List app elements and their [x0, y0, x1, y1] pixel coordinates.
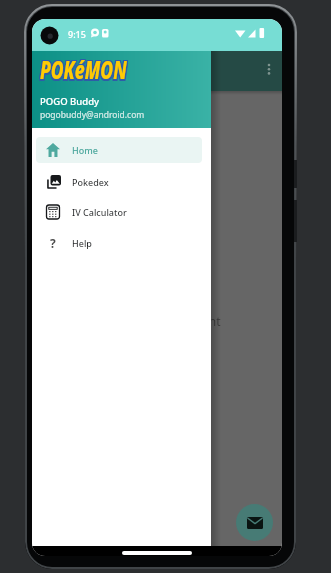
staticText: ? [50, 235, 56, 251]
staticText: Home [72, 144, 98, 156]
staticText: pogobuddy@android.com [40, 109, 145, 121]
staticText: POKéMON [39, 55, 126, 88]
staticText: IV Calculator [72, 206, 127, 218]
staticText: POKéMON [41, 53, 129, 86]
staticText: This is home Fragment [92, 313, 221, 329]
button[interactable]: ? [36, 230, 202, 256]
staticText: POKéMON [40, 53, 127, 86]
staticText: Pokedex [72, 176, 109, 188]
button[interactable] [263, 62, 275, 84]
button[interactable]: IV Calculator [36, 199, 202, 225]
staticText: POKéMON [41, 51, 129, 85]
staticText: POKéMON [41, 55, 129, 88]
staticText: POKéMON [40, 55, 127, 88]
button[interactable]: Pokedex [36, 169, 202, 195]
button[interactable] [236, 504, 273, 541]
staticText: 9:15 [68, 28, 86, 40]
staticText: POGO Buddy [40, 95, 100, 108]
staticText: POKéMON [39, 53, 126, 86]
staticText: POKéMON [40, 51, 127, 85]
staticText: POKéMON [39, 51, 126, 85]
button[interactable]: Home [36, 137, 202, 163]
staticText: Help [72, 237, 92, 249]
